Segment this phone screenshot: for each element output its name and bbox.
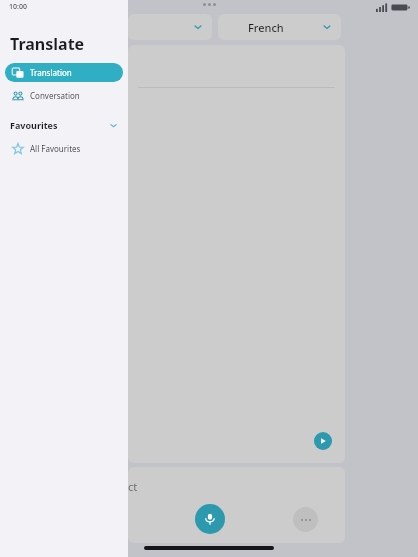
button[interactable]: More options	[293, 507, 318, 532]
button[interactable]: French	[218, 14, 341, 40]
staticText: Translation	[30, 67, 72, 78]
staticText: All Favourites	[30, 143, 81, 154]
staticText: French	[248, 20, 284, 35]
button[interactable]: All Favourites	[5, 139, 123, 158]
button[interactable]	[128, 14, 212, 40]
button[interactable]: Microphone	[195, 504, 225, 534]
staticText: 10:00	[9, 2, 27, 12]
button[interactable]: Translation	[5, 63, 123, 82]
button[interactable]: Play	[314, 432, 332, 450]
staticText: Translate	[10, 33, 85, 55]
button[interactable]: Conversation	[5, 86, 123, 105]
staticText: ct	[128, 479, 138, 494]
staticText: Conversation	[30, 90, 80, 101]
staticText: Favourites	[10, 119, 58, 131]
button[interactable]: Favourites	[0, 116, 128, 134]
